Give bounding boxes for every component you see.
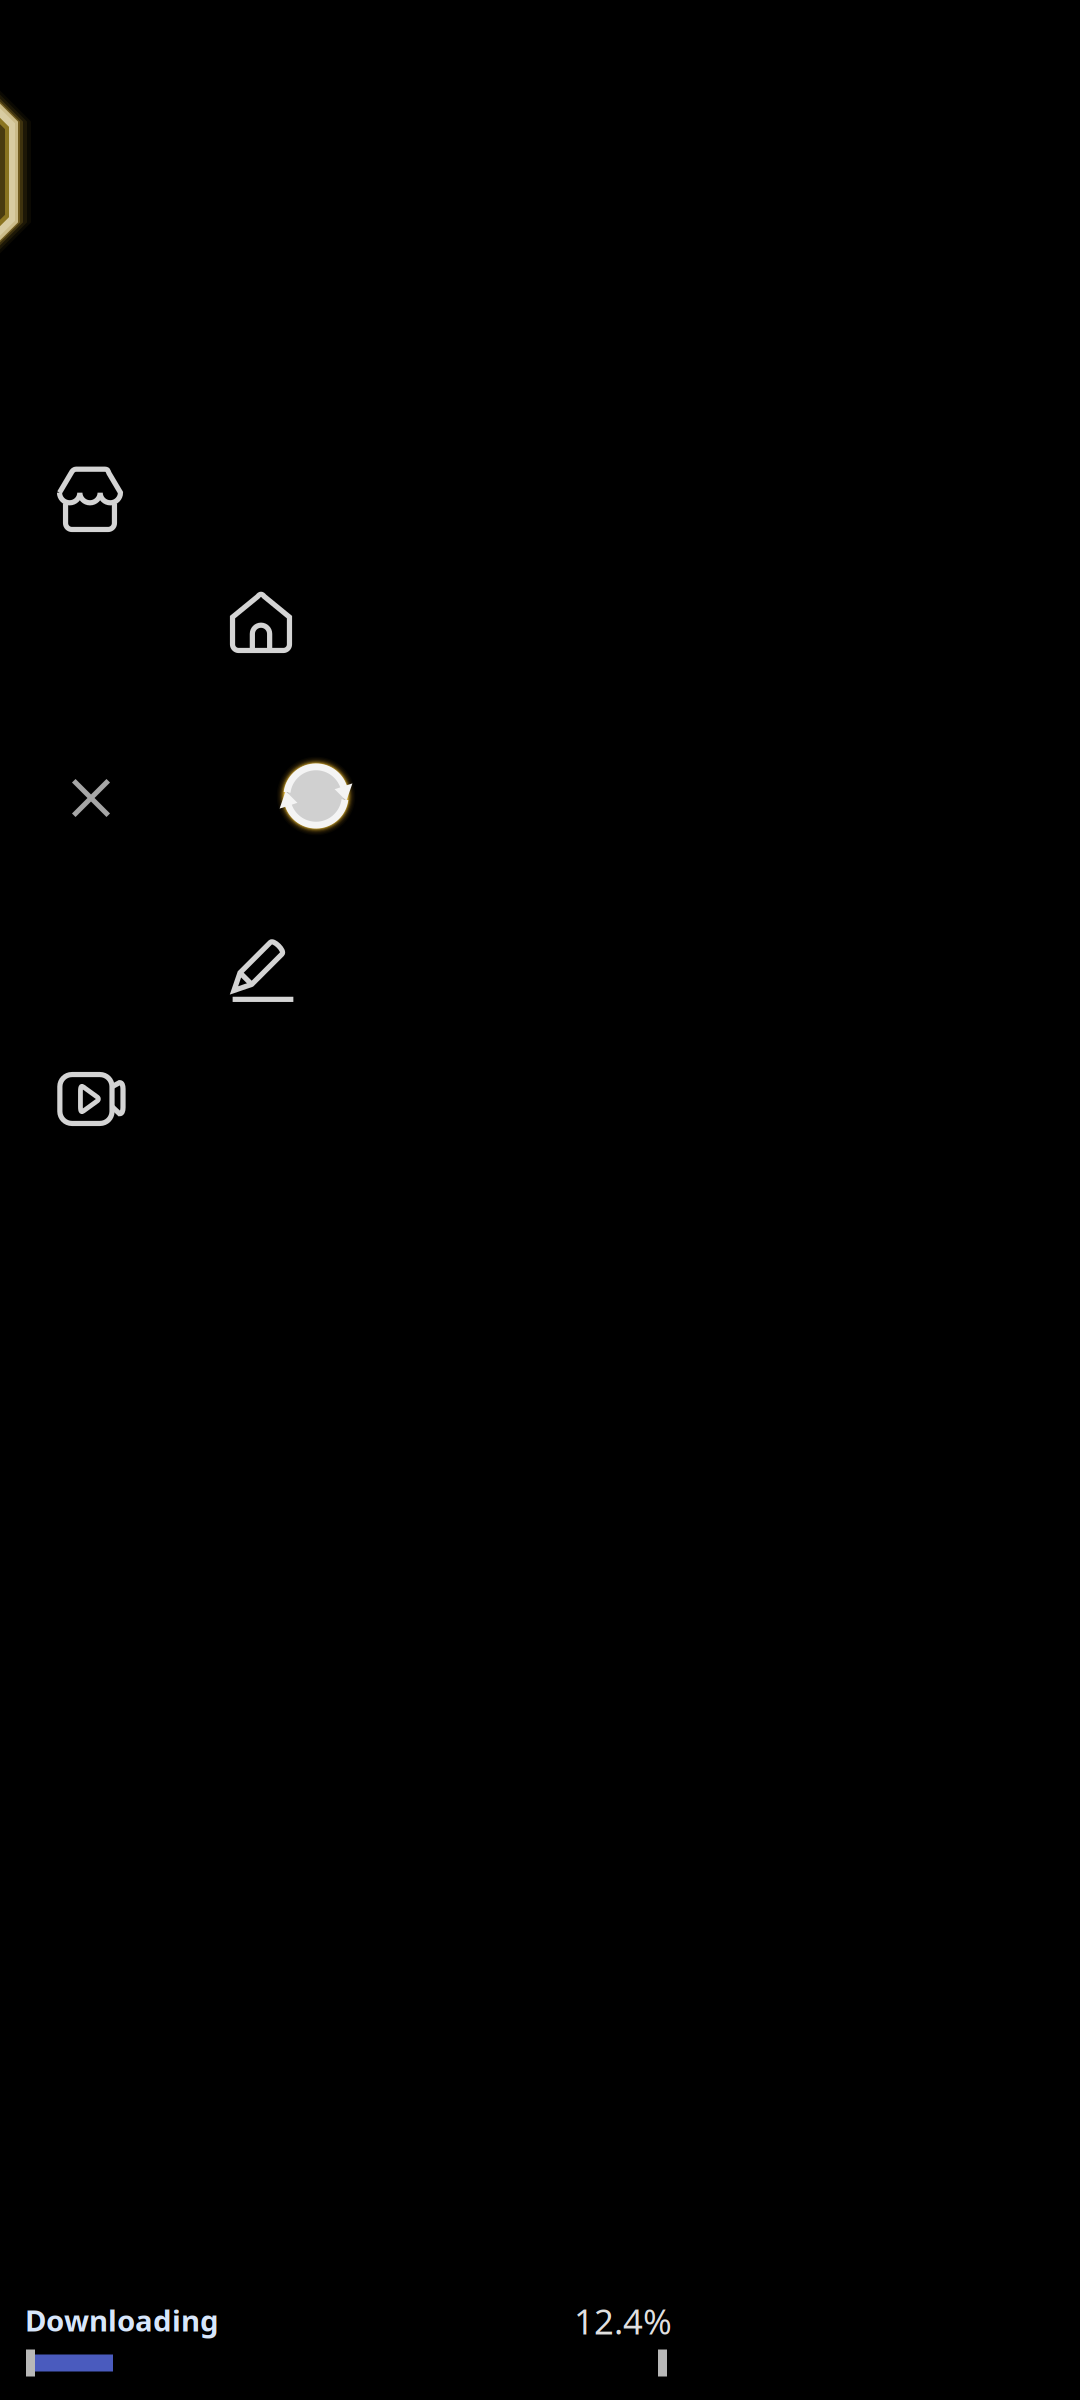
button[interactable]: Record video	[57, 1072, 127, 1126]
button[interactable]: Edit	[229, 935, 295, 1001]
button[interactable]: Close	[71, 778, 111, 818]
staticText: 12.4%	[574, 2298, 672, 2344]
button[interactable]: Refresh	[280, 760, 352, 832]
staticText: Downloading	[25, 2300, 219, 2339]
button[interactable]: Home	[229, 590, 293, 654]
button[interactable]: Marketplace	[56, 465, 123, 532]
